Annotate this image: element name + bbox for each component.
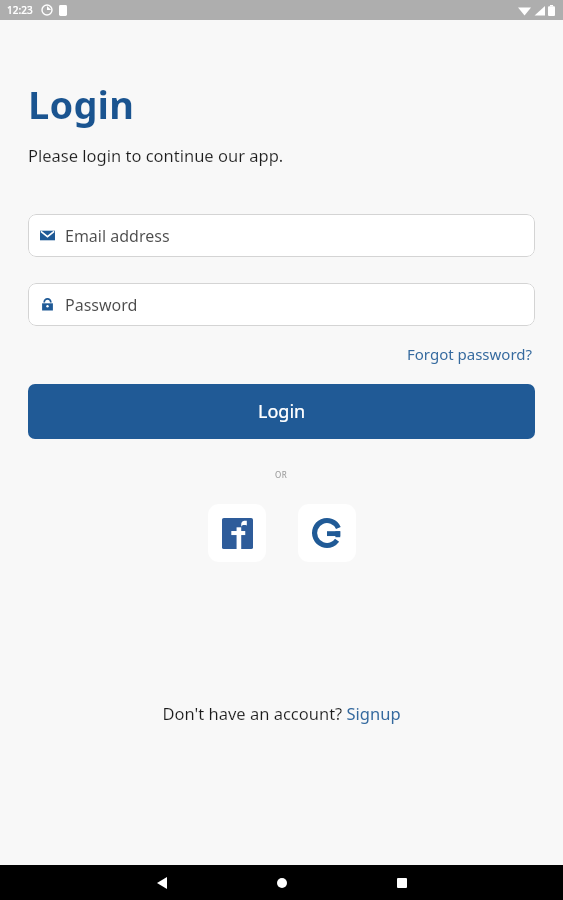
staticText: Login (28, 78, 135, 130)
button[interactable]: Don't have an account? Signup (158, 699, 405, 727)
button[interactable]: Recent apps (387, 868, 417, 898)
staticText: Forgot password? (407, 344, 533, 364)
staticText: Login (258, 399, 306, 424)
staticText: Don't have an account? Signup (162, 702, 401, 724)
staticText: Password (65, 294, 138, 316)
button[interactable]: Home (267, 868, 297, 898)
button[interactable]: Password (28, 283, 535, 326)
button[interactable]: Login (28, 384, 535, 439)
staticText: Please login to continue our app. (28, 144, 284, 166)
staticText: OR (275, 469, 288, 480)
staticText: 12:23 (7, 3, 33, 17)
button[interactable]: Sign in with Facebook (208, 504, 266, 562)
staticText: Email address (65, 225, 170, 247)
button[interactable]: Forgot password? (405, 342, 535, 366)
button[interactable]: Email address (28, 214, 535, 257)
button[interactable]: Back (147, 868, 177, 898)
button[interactable]: Sign in with Google (298, 504, 356, 562)
